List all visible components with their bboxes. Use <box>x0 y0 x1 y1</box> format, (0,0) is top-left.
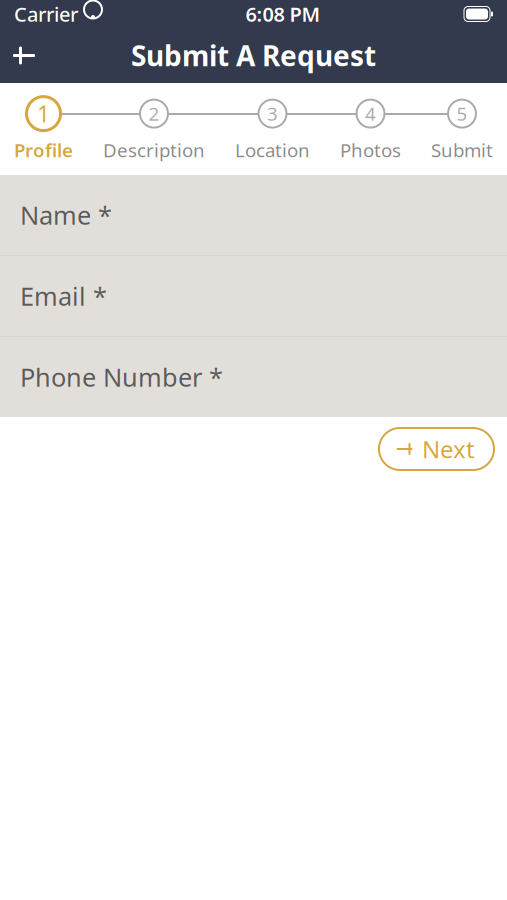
staticText: 3 <box>267 101 278 126</box>
staticText: Photos <box>340 138 401 162</box>
button[interactable]: Back <box>0 33 48 77</box>
staticText: 6:08 PM <box>245 1 320 27</box>
button[interactable]: Next <box>379 428 494 470</box>
staticText: Description <box>103 138 205 162</box>
staticText: Location <box>235 138 310 162</box>
staticText: Carrier <box>14 1 78 27</box>
staticText: Next <box>422 433 475 465</box>
staticText: Email * <box>20 279 107 313</box>
staticText: Phone Number * <box>20 360 223 394</box>
staticText: 1 <box>37 99 50 129</box>
staticText: 4 <box>365 101 376 126</box>
staticText: Name * <box>20 198 112 232</box>
staticText: 2 <box>148 101 159 126</box>
staticText: Submit <box>431 138 493 162</box>
staticText: Submit A Request <box>131 37 376 74</box>
staticText: Profile <box>14 138 73 162</box>
staticText: 5 <box>456 101 467 126</box>
